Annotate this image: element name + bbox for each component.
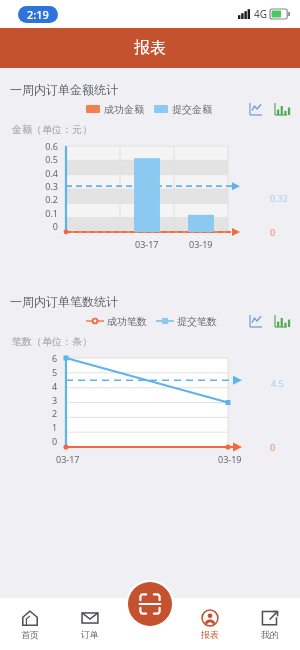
button[interactable]: 首页 [0, 598, 60, 650]
staticText: 报表 [201, 629, 219, 640]
button[interactable]: Scan [128, 582, 172, 626]
staticText: 提交笔数 [177, 315, 217, 328]
button[interactable]: Line chart [247, 100, 265, 118]
staticText: 6 [52, 352, 58, 364]
staticText: 首页 [21, 629, 39, 640]
staticText: 5 [52, 366, 58, 378]
staticText: 1 [52, 421, 58, 433]
staticText: 3 [52, 394, 58, 406]
staticText: 03-19 [218, 453, 242, 465]
staticText: 提交金额 [172, 103, 212, 116]
staticText: 一周内订单金额统计 [10, 82, 118, 97]
staticText: 0.4 [45, 167, 58, 179]
staticText: 金额（单位：元） [12, 123, 92, 136]
staticText: 03-17 [135, 238, 159, 250]
button[interactable]: 报表 [180, 598, 240, 650]
staticText: 0.1 [45, 207, 58, 219]
staticText: 4G [254, 7, 267, 21]
staticText: 2:19 [27, 7, 49, 22]
staticText: 4 [52, 380, 58, 392]
staticText: 0 [52, 220, 58, 232]
button[interactable]: Line chart [247, 312, 265, 330]
staticText: 03-17 [56, 453, 80, 465]
staticText: 成功金额 [104, 103, 144, 116]
button[interactable]: Bar chart [272, 100, 290, 118]
button[interactable]: 我的 [240, 598, 300, 650]
button[interactable]: Bar chart [272, 312, 290, 330]
staticText: 0.3 [45, 180, 58, 192]
staticText: 03-19 [189, 238, 213, 250]
staticText: 一周内订单笔数统计 [10, 294, 118, 309]
staticText: 0 [52, 435, 58, 447]
staticText: 0 [270, 441, 276, 453]
staticText: 成功笔数 [107, 315, 147, 328]
staticText: 我的 [261, 629, 279, 640]
staticText: 笔数（单位：条） [12, 335, 92, 348]
staticText: 4.5 [271, 377, 284, 389]
staticText: 报表 [134, 38, 166, 58]
staticText: 0.2 [45, 193, 58, 205]
staticText: 0.32 [270, 192, 288, 204]
staticText: 订单 [81, 629, 99, 640]
staticText: 0.5 [45, 153, 58, 165]
staticText: 2 [52, 407, 58, 419]
staticText: 0 [270, 226, 276, 238]
button[interactable]: 订单 [60, 598, 120, 650]
staticText: 0.6 [45, 140, 58, 152]
